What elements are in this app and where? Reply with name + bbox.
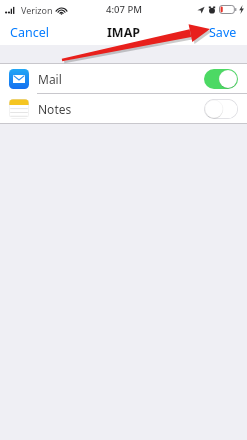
staticText: Save bbox=[209, 24, 237, 41]
staticText: Cancel bbox=[10, 24, 49, 41]
staticText: 4:07 PM bbox=[106, 3, 142, 16]
button[interactable]: Mail toggle bbox=[204, 69, 238, 89]
button[interactable]: Notes bbox=[0, 94, 247, 123]
button[interactable]: Mail bbox=[0, 64, 247, 93]
button[interactable]: Notes toggle bbox=[204, 99, 238, 119]
button[interactable]: Save bbox=[199, 20, 247, 45]
staticText: Mail bbox=[38, 71, 62, 87]
staticText: Verizon bbox=[21, 4, 53, 16]
button[interactable]: Cancel bbox=[0, 20, 59, 45]
staticText: IMAP bbox=[107, 24, 141, 41]
staticText: Notes bbox=[38, 101, 72, 117]
